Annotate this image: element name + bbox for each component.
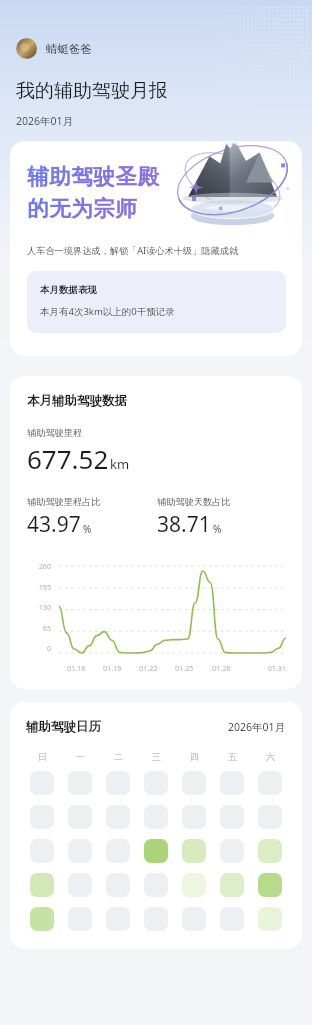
button[interactable]: 日期 xyxy=(144,839,168,863)
button[interactable]: 日期 xyxy=(30,839,54,863)
staticText: 38.71 xyxy=(157,510,211,539)
button[interactable]: 日期 xyxy=(182,839,206,863)
staticText: 677.52 xyxy=(27,441,109,476)
button[interactable]: 日期 xyxy=(68,805,92,829)
button[interactable]: 日期 xyxy=(182,805,206,829)
staticText: 日 xyxy=(38,751,47,762)
button[interactable]: 本月辅助驾驶数据 xyxy=(10,376,302,689)
button[interactable]: 辅助驾驶日历 xyxy=(10,702,302,949)
button[interactable]: 日期 xyxy=(258,771,282,795)
button[interactable]: 日期 xyxy=(220,805,244,829)
staticText: 四 xyxy=(190,751,199,762)
staticText: 195 xyxy=(27,582,51,592)
staticText: 43.97 xyxy=(27,510,81,539)
button[interactable]: 本月数据表现 xyxy=(27,271,286,333)
staticText: km xyxy=(110,455,130,473)
staticText: 六 xyxy=(266,751,275,762)
staticText: 01.28 xyxy=(212,663,249,673)
staticText: 01.19 xyxy=(103,663,139,673)
button[interactable]: 日期 xyxy=(144,771,168,795)
staticText: 01.31 xyxy=(249,663,286,673)
button[interactable]: 日期 xyxy=(68,771,92,795)
staticText: 0 xyxy=(27,643,51,653)
staticText: 辅助驾驶日历 xyxy=(26,719,101,735)
staticText: 五 xyxy=(228,751,237,762)
button[interactable]: 日期 xyxy=(144,873,168,897)
button[interactable]: 日期 xyxy=(144,907,168,931)
staticText: % xyxy=(213,522,222,536)
staticText: 01.22 xyxy=(139,663,175,673)
button[interactable]: 日期 xyxy=(106,873,130,897)
staticText: 蜻蜓爸爸 xyxy=(46,42,92,56)
button[interactable]: 日期 xyxy=(258,839,282,863)
staticText: 130 xyxy=(27,602,51,612)
button[interactable]: 日期 xyxy=(220,771,244,795)
staticText: 2026年01月 xyxy=(16,114,74,128)
button[interactable]: 日期 xyxy=(220,873,244,897)
button[interactable]: 日期 xyxy=(68,907,92,931)
button[interactable]: 日期 xyxy=(30,771,54,795)
staticText: 01.16 xyxy=(67,663,103,673)
button[interactable]: 日期 xyxy=(106,839,130,863)
staticText: 人车合一境界达成，解锁「AI读心术十级」隐藏成就 xyxy=(27,244,239,257)
staticText: 本月有4次3km以上的0干预记录 xyxy=(40,305,175,318)
staticText: 我的辅助驾驶月报 xyxy=(16,79,168,103)
staticText: 辅助驾驶圣殿 xyxy=(27,163,159,190)
staticText: 65 xyxy=(27,623,51,633)
button[interactable]: 日期 xyxy=(30,873,54,897)
staticText: 辅助驾驶里程占比 xyxy=(27,496,101,508)
button[interactable]: 日期 xyxy=(182,771,206,795)
button[interactable]: 日期 xyxy=(68,873,92,897)
button[interactable]: 日期 xyxy=(182,907,206,931)
staticText: 01.25 xyxy=(175,663,212,673)
button[interactable]: 日期 xyxy=(68,839,92,863)
staticText: % xyxy=(83,522,92,536)
button[interactable]: 蜻蜓爸爸 xyxy=(16,38,100,59)
button[interactable]: 日期 xyxy=(106,771,130,795)
staticText: 辅助驾驶里程 xyxy=(27,427,83,439)
button[interactable]: 日期 xyxy=(30,907,54,931)
button[interactable]: 日期 xyxy=(106,907,130,931)
staticText: 260 xyxy=(27,561,51,571)
button[interactable]: 日期 xyxy=(220,839,244,863)
staticText: 2026年01月 xyxy=(228,720,286,734)
staticText: 的无为宗师 xyxy=(27,195,137,222)
button[interactable]: 日期 xyxy=(258,907,282,931)
button[interactable]: 日期 xyxy=(182,873,206,897)
staticText: 辅助驾驶天数占比 xyxy=(157,496,231,508)
button[interactable]: 日期 xyxy=(258,873,282,897)
button[interactable]: 日期 xyxy=(144,805,168,829)
staticText: 二 xyxy=(114,751,123,762)
button[interactable]: 日期 xyxy=(220,907,244,931)
staticText: 一 xyxy=(76,751,85,762)
staticText: 三 xyxy=(152,751,161,762)
button[interactable]: 日期 xyxy=(106,805,130,829)
button[interactable]: 辅助驾驶圣殿 xyxy=(10,141,302,356)
staticText: 本月数据表现 xyxy=(40,284,97,296)
button[interactable]: 日期 xyxy=(30,805,54,829)
button[interactable]: 日期 xyxy=(258,805,282,829)
staticText: 本月辅助驾驶数据 xyxy=(27,393,127,409)
